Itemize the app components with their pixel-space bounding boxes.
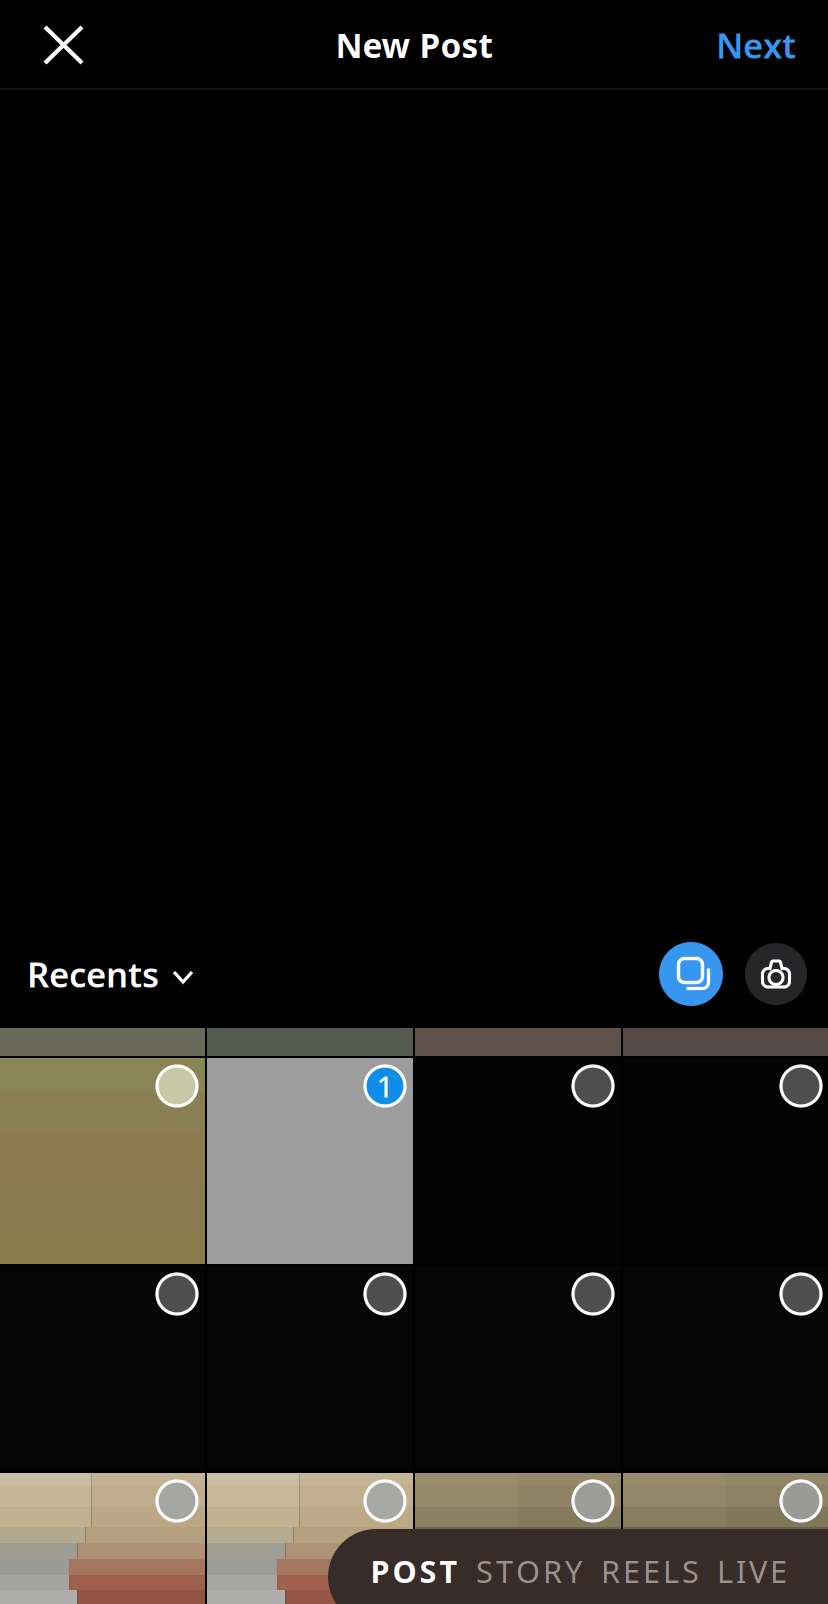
staticText: Recents — [27, 951, 159, 997]
staticText: S T O R Y — [476, 1551, 582, 1591]
staticText: Next — [716, 22, 796, 68]
button[interactable]: Photo — [207, 1266, 413, 1471]
button[interactable]: Photo — [0, 1266, 205, 1471]
button[interactable]: Select multiple — [659, 942, 723, 1006]
staticText: P O S T — [370, 1551, 457, 1591]
button[interactable]: Photo — [207, 1473, 413, 1604]
button[interactable]: R E E L S — [601, 1523, 699, 1604]
button[interactable]: S T O R Y — [476, 1523, 582, 1604]
staticText: New Post — [335, 23, 492, 67]
button[interactable]: Photo — [207, 1058, 413, 1264]
button[interactable]: Photo — [623, 1266, 828, 1471]
staticText: 1 — [376, 1066, 393, 1105]
button[interactable]: Next — [692, 1, 828, 89]
button[interactable]: Photo — [415, 1473, 621, 1604]
button[interactable]: L I V E — [717, 1523, 787, 1604]
button[interactable]: Recents — [0, 920, 212, 1028]
staticText: R E E L S — [601, 1551, 699, 1591]
button[interactable]: Photo — [623, 1473, 828, 1604]
button[interactable]: Photo — [0, 1473, 205, 1604]
button[interactable]: Photo — [0, 1058, 205, 1264]
staticText: L I V E — [717, 1551, 787, 1591]
button[interactable]: Close — [0, 1, 112, 89]
button[interactable]: P O S T — [370, 1523, 457, 1604]
button[interactable]: Photo — [623, 1058, 828, 1264]
button[interactable]: Photo — [415, 1058, 621, 1264]
button[interactable]: Photo — [415, 1266, 621, 1471]
button[interactable]: Camera — [723, 943, 828, 1005]
